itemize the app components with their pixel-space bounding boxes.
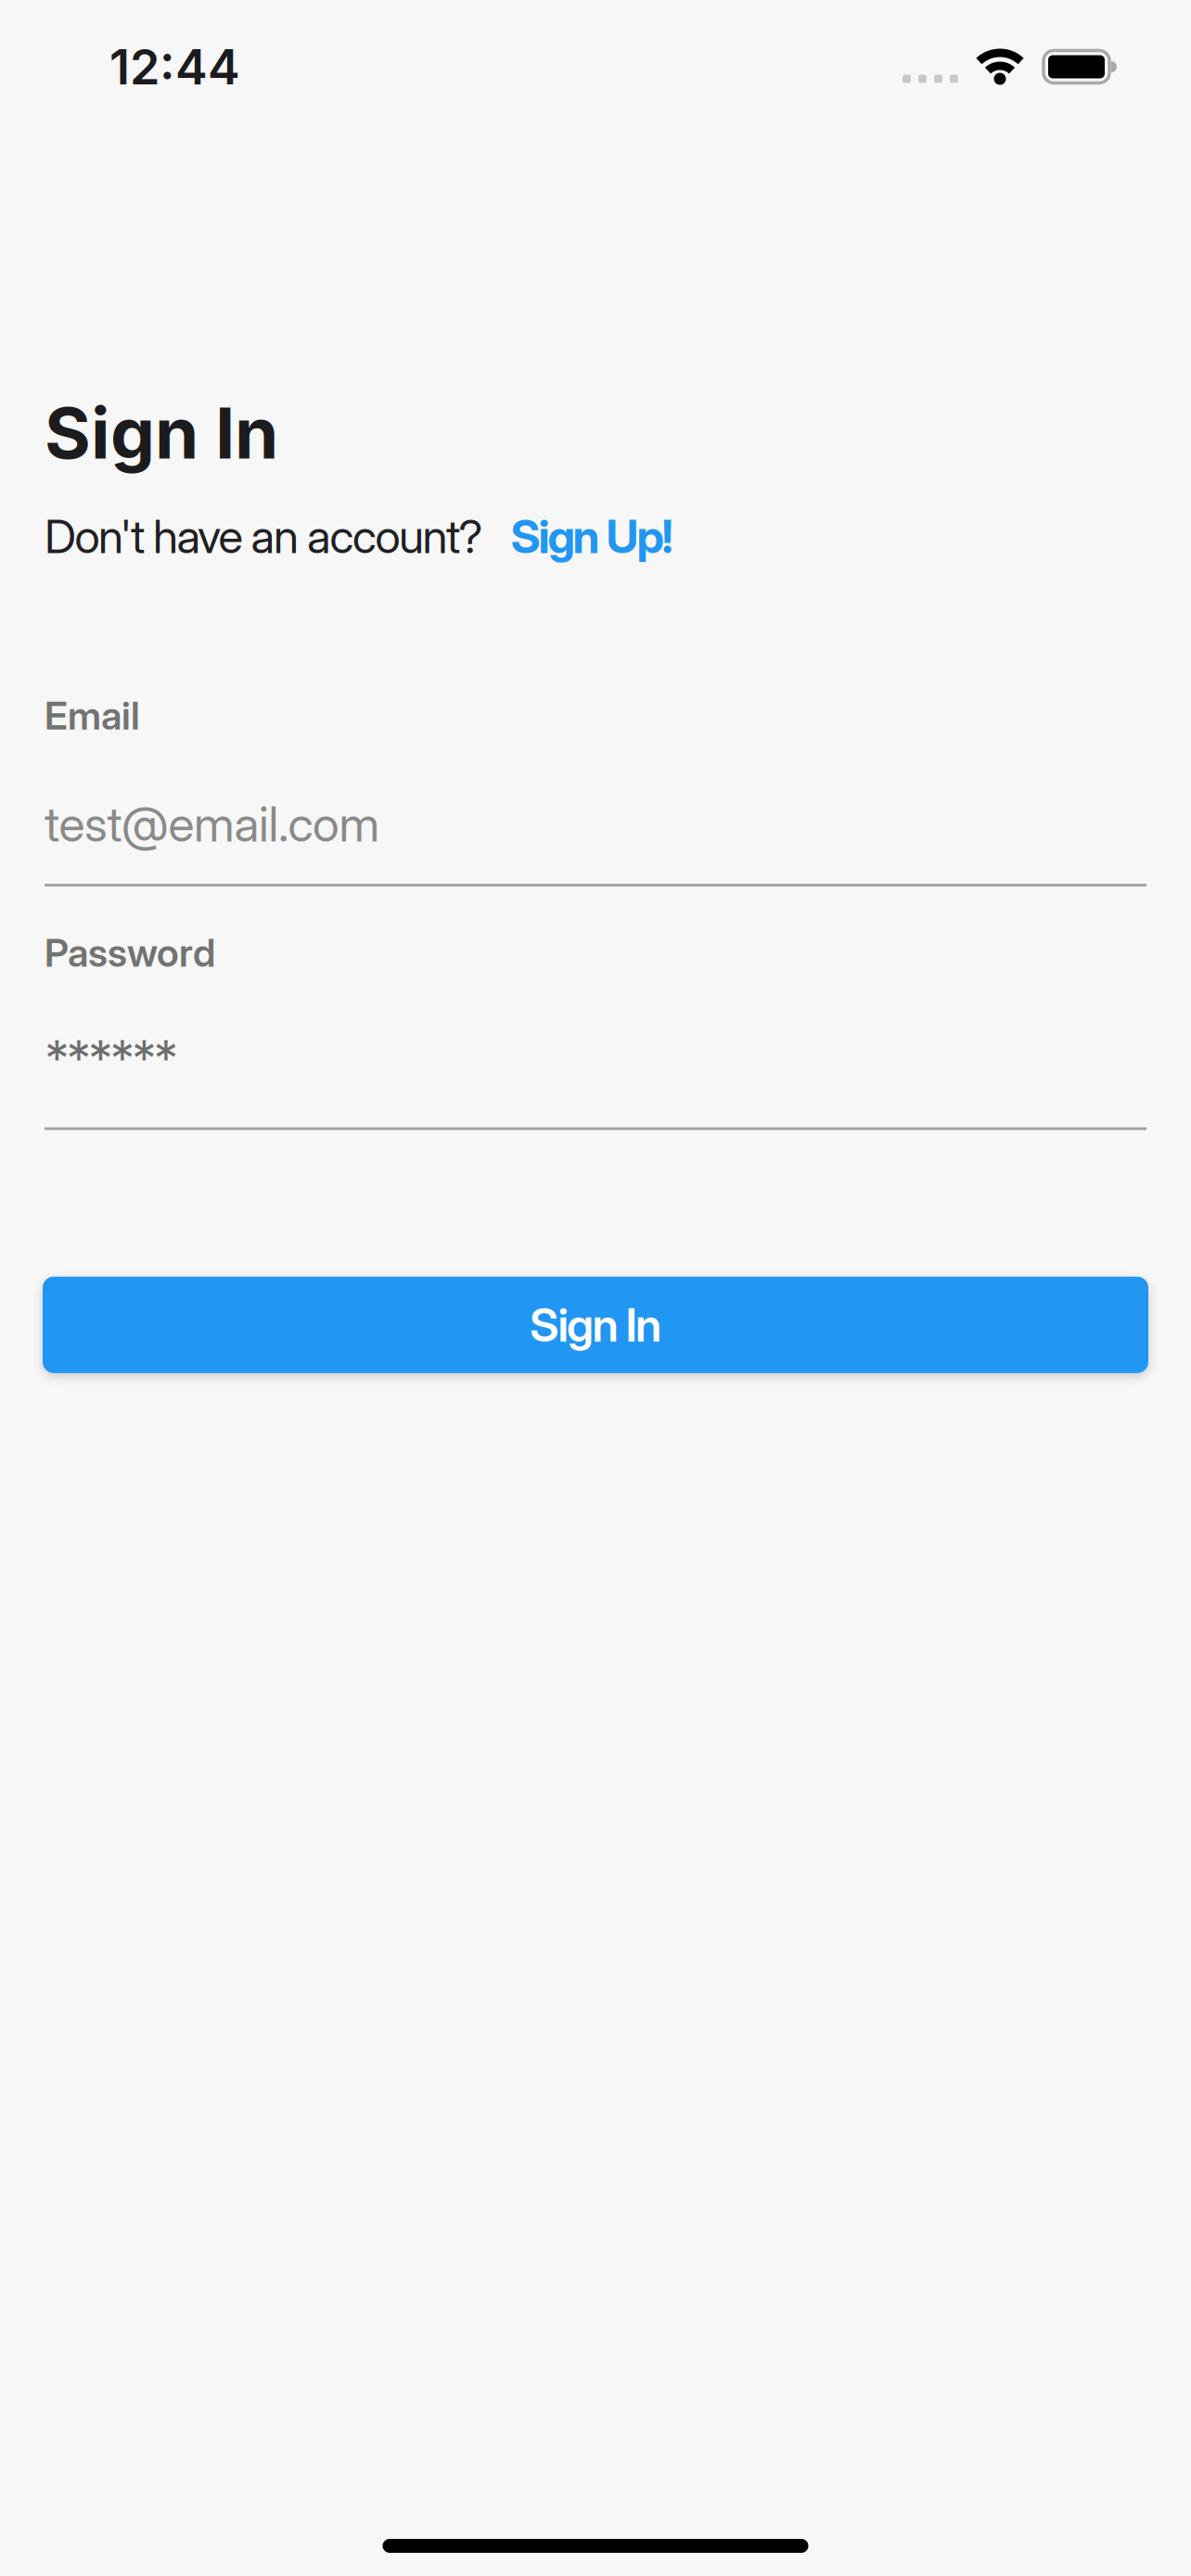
staticText: Password: [45, 930, 215, 975]
secureTextField[interactable]: ******: [45, 1029, 179, 1087]
button[interactable]: Sign In: [43, 1277, 1148, 1373]
staticText: Sign Up!: [511, 509, 673, 564]
staticText: Don't have an account?: [45, 509, 483, 564]
staticText: Sign In: [530, 1297, 661, 1353]
staticText: Sign In: [45, 391, 278, 474]
staticText: Email: [45, 693, 140, 738]
button[interactable]: Sign Up!: [483, 509, 673, 564]
staticText: 12:44: [109, 38, 240, 95]
staticText: test@email.com: [45, 795, 380, 853]
staticText: ******: [45, 1029, 179, 1087]
textField[interactable]: test@email.com: [45, 795, 380, 853]
